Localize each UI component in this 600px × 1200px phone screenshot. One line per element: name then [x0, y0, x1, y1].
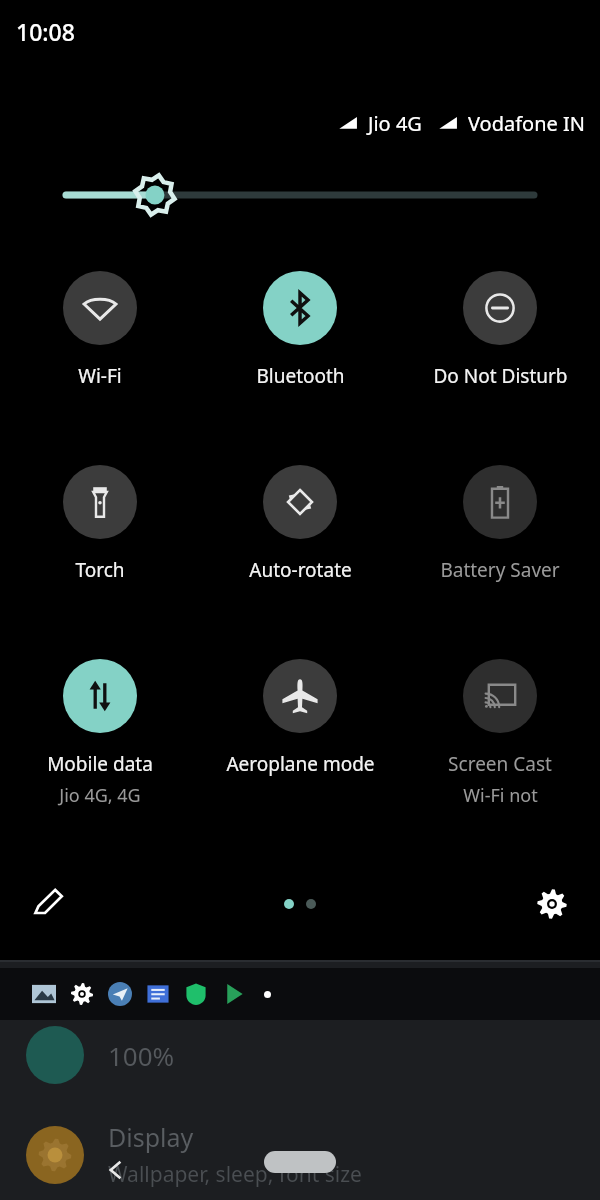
button[interactable]: Bluetooth — [200, 271, 400, 389]
button[interactable]: Brightness — [0, 171, 600, 219]
staticText: Auto-rotate — [249, 557, 352, 583]
button[interactable]: Aeroplane mode — [200, 659, 400, 777]
staticText: Jio 4G — [368, 110, 422, 137]
staticText: Wi-Fi — [78, 363, 122, 389]
staticText: Bluetooth — [256, 363, 345, 389]
button[interactable]: Edit tiles — [24, 880, 72, 928]
button[interactable]: Do Not Disturb — [400, 271, 600, 389]
staticText: Jio 4G, 4G — [59, 783, 141, 808]
staticText: Wallpaper, sleep, font size — [108, 1160, 362, 1189]
button[interactable]: Screen Cast — [400, 659, 600, 808]
staticText: Screen Cast — [448, 751, 552, 777]
button[interactable]: Settings — [528, 880, 576, 928]
staticText: 100% — [108, 1038, 175, 1073]
staticText: Display — [108, 1120, 194, 1154]
button[interactable]: Back — [96, 1150, 136, 1190]
button[interactable]: Auto-rotate — [200, 465, 400, 583]
staticText: Torch — [75, 557, 125, 583]
button[interactable]: Torch — [0, 465, 200, 583]
button[interactable]: Mobile data — [0, 659, 200, 808]
staticText: Mobile data — [47, 751, 153, 777]
staticText: Wi-Fi not — [463, 783, 538, 808]
staticText: Do Not Disturb — [433, 363, 568, 389]
staticText: Vodafone IN — [468, 110, 586, 137]
staticText: Battery Saver — [440, 557, 560, 583]
button[interactable]: Battery Saver — [400, 465, 600, 583]
staticText: Aeroplane mode — [226, 751, 375, 777]
staticText: 10:08 — [16, 16, 75, 47]
button[interactable]: Wi-Fi — [0, 271, 200, 389]
button[interactable]: Home — [264, 1151, 336, 1173]
